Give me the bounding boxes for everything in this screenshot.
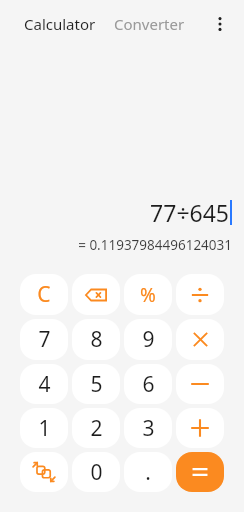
button[interactable]: Plus [176,408,224,448]
staticText: C [37,280,51,309]
button[interactable]: 4 [20,364,68,404]
button[interactable]: More options [202,6,238,42]
button[interactable]: Multiply [176,319,224,360]
staticText: 9 [142,325,155,354]
staticText: 8 [90,325,103,354]
button[interactable]: . [124,452,172,492]
staticText: 6 [142,370,155,399]
button[interactable]: Equals [176,452,224,492]
staticText: 5 [90,370,103,399]
staticText: 2 [90,414,103,443]
button[interactable]: 3 [124,408,172,448]
button[interactable]: C [20,274,68,315]
staticText: 77÷645 [150,197,229,228]
staticText: 7 [38,325,51,354]
staticText: 4 [38,370,51,399]
button[interactable]: 7 [20,319,68,360]
staticText: Converter [114,14,185,34]
button[interactable]: Scientific calculator [20,452,68,492]
button[interactable]: % [124,274,172,315]
button[interactable]: 9 [124,319,172,360]
staticText: 1 [38,414,51,443]
button[interactable]: Minus [176,364,224,404]
button[interactable]: 6 [124,364,172,404]
staticText: 3 [142,414,155,443]
button[interactable]: 8 [72,319,120,360]
staticText: = 0.11937984496124031 [78,236,232,254]
button[interactable]: 5 [72,364,120,404]
button[interactable]: 2 [72,408,120,448]
staticText: 0 [90,458,103,487]
button[interactable]: 0 [72,452,120,492]
button[interactable]: Divide [176,274,224,315]
button[interactable]: Converter [112,10,187,38]
staticText: Calculator [24,14,96,34]
staticText: % [140,282,156,308]
button[interactable]: Calculator [22,10,98,38]
button[interactable]: 1 [20,408,68,448]
staticText: . [145,458,151,487]
button[interactable]: Backspace [72,274,120,315]
